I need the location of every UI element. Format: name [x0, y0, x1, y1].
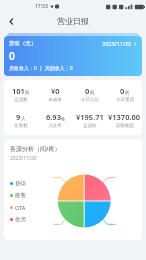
staticText: 应收账款 — [116, 123, 134, 129]
staticText: ¥1370.00 — [108, 112, 141, 122]
staticText: 总房价 — [83, 123, 97, 129]
staticText: 散客 — [15, 192, 26, 199]
staticText: 0 — [85, 86, 90, 96]
staticText: 101 — [12, 86, 25, 96]
staticText: 会员 — [15, 216, 26, 223]
staticText: 间 — [90, 90, 95, 96]
staticText: OTA — [15, 204, 26, 211]
staticText: ¥195.71 — [76, 112, 104, 122]
staticText: 9 — [16, 112, 21, 122]
staticText: 17:53 — [35, 3, 48, 10]
staticText: 今日入住 — [81, 97, 99, 103]
button[interactable]: Back — [3, 13, 19, 29]
staticText: 人 — [21, 116, 26, 122]
staticText: 今日退房 — [116, 97, 134, 103]
staticText: ¥0 — [51, 86, 60, 96]
staticText: 营业日报 — [57, 16, 89, 26]
staticText: 间 — [125, 90, 130, 96]
staticText: 总房数 — [14, 97, 28, 103]
staticText: 2023/11/20 — [10, 155, 37, 162]
staticText: 房租收入：0 | 其他收入：0 — [9, 65, 73, 72]
staticText: 营收（元） — [9, 40, 37, 47]
staticText: 入住率 — [48, 123, 62, 129]
staticText: 未成单 — [48, 97, 62, 103]
staticText: 客源分析（间/夜） — [10, 145, 61, 153]
staticText: 0 — [120, 86, 125, 96]
staticText: 6.93 — [46, 112, 61, 122]
staticText: 间 — [25, 90, 30, 96]
staticText: % — [61, 116, 65, 122]
button[interactable]: 营收（元） — [4, 36, 142, 76]
staticText: 协议 — [15, 180, 26, 187]
staticText: 0 — [9, 49, 15, 63]
staticText: 住客数 — [14, 123, 28, 129]
staticText: 2023/11/20 — [102, 40, 132, 47]
